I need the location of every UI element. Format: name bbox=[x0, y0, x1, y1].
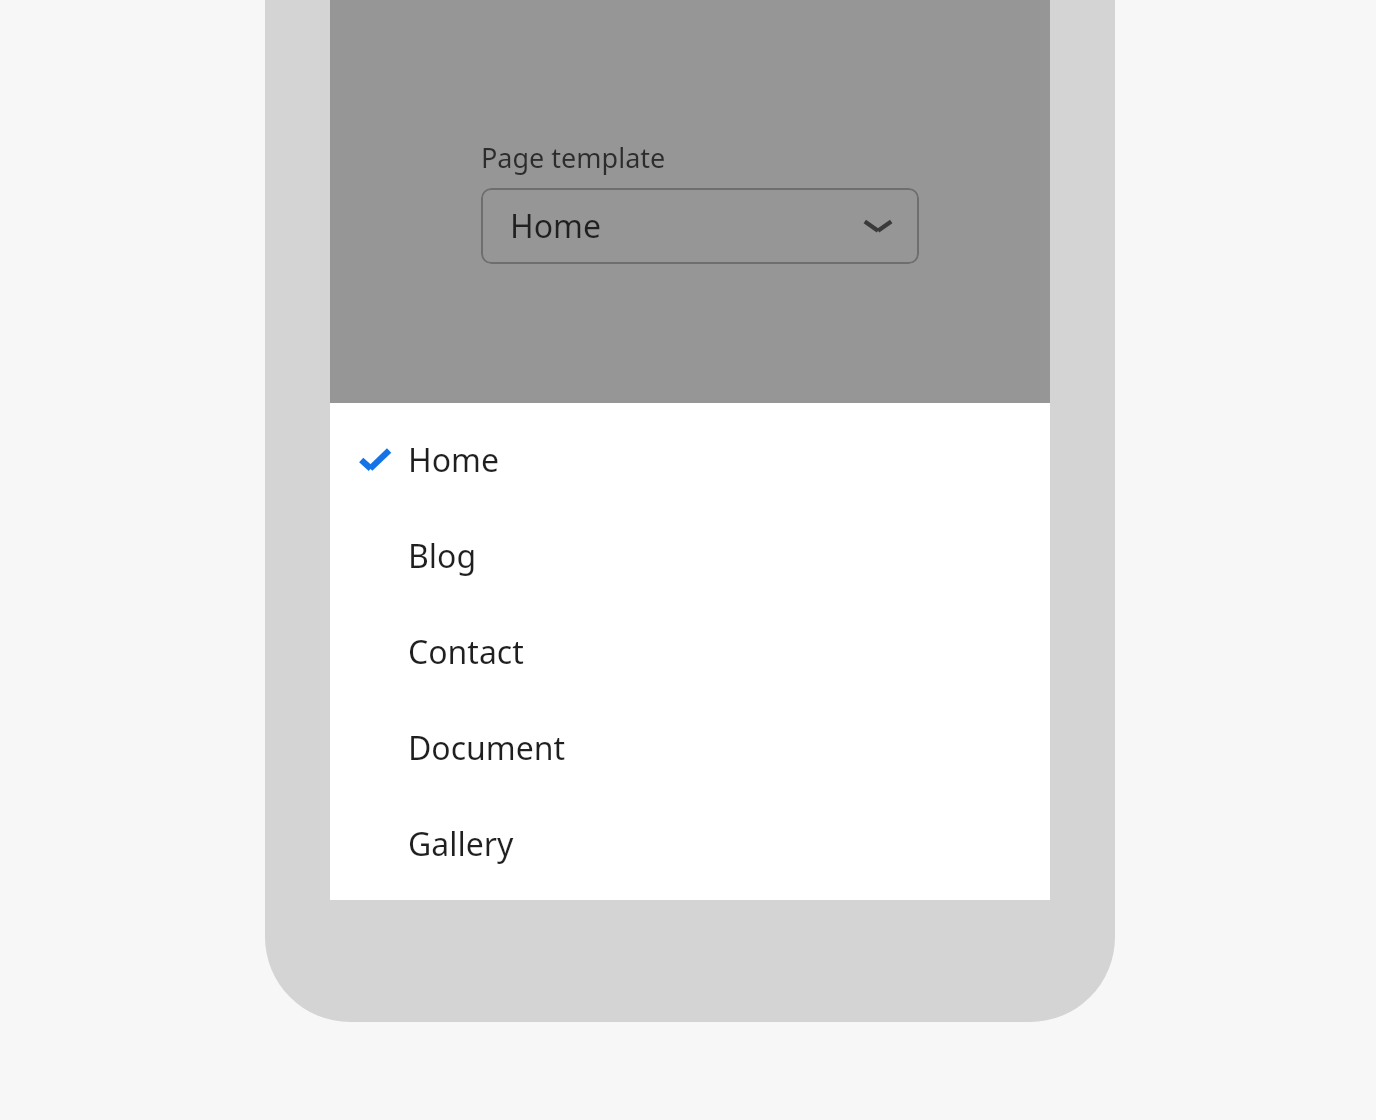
staticText: Contact bbox=[408, 630, 524, 674]
staticText: Blog bbox=[408, 534, 477, 578]
button[interactable]: Home bbox=[330, 412, 1050, 508]
button[interactable]: Blog bbox=[330, 508, 1050, 604]
staticText: Home bbox=[408, 438, 500, 482]
staticText: Gallery bbox=[408, 822, 514, 866]
button[interactable]: Home bbox=[481, 188, 919, 264]
staticText: Document bbox=[408, 726, 566, 770]
staticText: Home bbox=[510, 204, 602, 248]
button[interactable]: Document bbox=[330, 700, 1050, 796]
button[interactable]: Gallery bbox=[330, 796, 1050, 892]
button[interactable]: Contact bbox=[330, 604, 1050, 700]
staticText: Page template bbox=[481, 139, 666, 176]
